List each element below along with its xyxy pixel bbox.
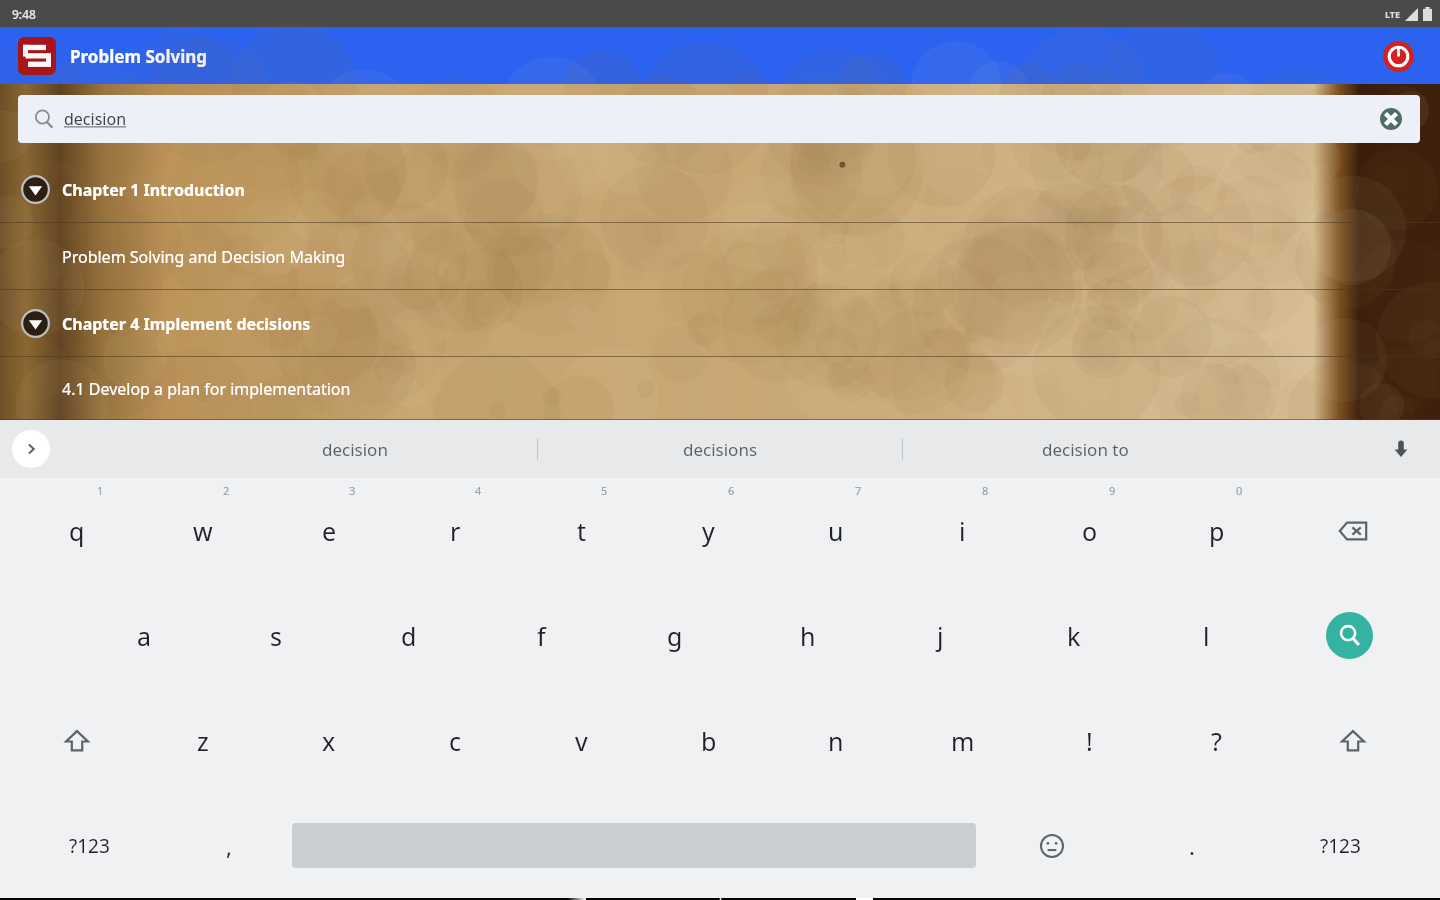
staticText: f: [537, 619, 546, 653]
button[interactable]: .: [1128, 793, 1255, 898]
button[interactable]: n: [772, 688, 899, 793]
button[interactable]: Shift: [1280, 688, 1426, 793]
staticText: a: [137, 619, 152, 653]
staticText: e: [322, 514, 337, 548]
staticText: Chapter 1 Introduction: [62, 179, 245, 201]
button[interactable]: e: [266, 478, 392, 583]
button[interactable]: h: [741, 583, 874, 688]
button[interactable]: m: [899, 688, 1026, 793]
button[interactable]: s: [210, 583, 342, 688]
button[interactable]: More suggestions: [12, 430, 50, 468]
button[interactable]: decision: [18, 95, 1420, 143]
staticText: ?: [1211, 724, 1222, 758]
button[interactable]: a: [78, 583, 210, 688]
staticText: n: [828, 724, 844, 758]
button[interactable]: 4.1 Develop a plan for implementation: [0, 357, 1440, 420]
staticText: 9: [1109, 483, 1116, 498]
staticText: decision: [322, 438, 388, 461]
button[interactable]: Recent apps: [828, 898, 900, 900]
button[interactable]: x: [266, 688, 392, 793]
button[interactable]: Problem Solving and Decision Making: [0, 223, 1440, 290]
staticText: 6: [728, 483, 735, 498]
button[interactable]: Chapter 4 Implement decisions: [0, 290, 1440, 357]
button[interactable]: v: [518, 688, 645, 793]
button[interactable]: f: [475, 583, 608, 688]
staticText: ,: [226, 831, 232, 861]
button[interactable]: p: [1153, 478, 1280, 583]
staticText: v: [575, 724, 588, 758]
button[interactable]: Problem Solving: [18, 37, 208, 75]
button[interactable]: c: [392, 688, 518, 793]
staticText: 1: [97, 483, 104, 498]
button[interactable]: Home: [684, 898, 756, 900]
button[interactable]: Logout: [1376, 34, 1420, 78]
button[interactable]: l: [1140, 583, 1273, 688]
button[interactable]: ?: [1153, 688, 1280, 793]
button[interactable]: Backspace: [1280, 478, 1426, 583]
button[interactable]: t: [518, 478, 645, 583]
button[interactable]: u: [772, 478, 899, 583]
button[interactable]: k: [1007, 583, 1140, 688]
button[interactable]: decision: [173, 420, 537, 478]
button[interactable]: decision to: [903, 420, 1267, 478]
staticText: decision: [64, 108, 127, 130]
button[interactable]: decisions: [538, 420, 902, 478]
staticText: Problem Solving and Decision Making: [62, 246, 346, 268]
staticText: u: [828, 514, 844, 548]
staticText: g: [667, 619, 683, 653]
staticText: x: [322, 724, 336, 758]
staticText: ?123: [1320, 833, 1361, 859]
staticText: q: [69, 514, 85, 548]
button[interactable]: q: [14, 478, 140, 583]
button[interactable]: j: [874, 583, 1007, 688]
staticText: LTE: [1385, 8, 1401, 20]
staticText: c: [449, 724, 462, 758]
staticText: 7: [855, 483, 862, 498]
button[interactable]: Voice input: [1384, 432, 1418, 466]
staticText: 4.1 Develop a plan for implementation: [62, 378, 351, 400]
button[interactable]: r: [392, 478, 518, 583]
button[interactable]: d: [342, 583, 475, 688]
staticText: j: [937, 619, 944, 653]
staticText: r: [450, 514, 461, 548]
staticText: p: [1209, 514, 1225, 548]
button[interactable]: Clear search: [1376, 104, 1406, 134]
staticText: i: [959, 514, 966, 548]
button[interactable]: ?123: [1255, 793, 1426, 898]
button[interactable]: b: [645, 688, 772, 793]
staticText: t: [577, 514, 587, 548]
staticText: .: [1189, 831, 1195, 861]
button[interactable]: y: [645, 478, 772, 583]
staticText: Problem Solving: [70, 45, 208, 68]
staticText: 8: [982, 483, 989, 498]
button[interactable]: [14, 688, 140, 793]
button[interactable]: Back: [540, 898, 612, 900]
button[interactable]: Emoji: [976, 793, 1128, 898]
staticText: ?123: [69, 833, 110, 859]
staticText: m: [951, 724, 975, 758]
staticText: Chapter 4 Implement decisions: [62, 313, 311, 335]
button[interactable]: ,: [165, 793, 292, 898]
button[interactable]: Search: [1273, 583, 1426, 688]
staticText: h: [800, 619, 816, 653]
staticText: l: [1203, 619, 1210, 653]
button[interactable]: Chapter 1 Introduction: [0, 156, 1440, 223]
staticText: o: [1082, 514, 1098, 548]
staticText: decision to: [1042, 438, 1129, 461]
staticText: !: [1086, 724, 1093, 758]
staticText: b: [701, 724, 717, 758]
staticText: 5: [601, 483, 608, 498]
staticText: 2: [223, 483, 230, 498]
staticText: decisions: [683, 438, 758, 461]
button[interactable]: ?123: [14, 793, 165, 898]
button[interactable]: i: [899, 478, 1026, 583]
staticText: 3: [349, 483, 356, 498]
button[interactable]: z: [140, 688, 266, 793]
staticText: 4: [475, 483, 482, 498]
staticText: d: [401, 619, 417, 653]
button[interactable]: w: [140, 478, 266, 583]
button[interactable]: !: [1026, 688, 1153, 793]
button[interactable]: o: [1026, 478, 1153, 583]
button[interactable]: g: [608, 583, 741, 688]
